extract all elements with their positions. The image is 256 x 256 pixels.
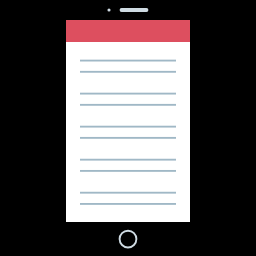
button[interactable]: Note page: [66, 42, 190, 222]
button[interactable]: Home: [116, 227, 140, 251]
